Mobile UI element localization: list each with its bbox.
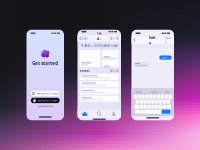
staticText: See all xyxy=(110,37,119,40)
staticText: Done xyxy=(165,36,172,44)
staticText: Today xyxy=(97,30,102,46)
staticText: See all xyxy=(110,69,119,73)
button[interactable]: Back xyxy=(133,37,140,43)
button[interactable] xyxy=(79,88,119,94)
staticText: Continue with Google xyxy=(37,92,59,95)
button[interactable]: Continue with Apple xyxy=(31,98,60,103)
button[interactable]: Back xyxy=(79,35,88,41)
button[interactable]: Done xyxy=(165,37,172,43)
button[interactable]: See all xyxy=(110,69,119,73)
button[interactable] xyxy=(79,81,119,87)
button[interactable]: Search xyxy=(92,110,106,118)
button[interactable] xyxy=(79,96,119,102)
button[interactable]: Continue with Google xyxy=(31,91,60,96)
staticText: Recent xyxy=(79,69,89,73)
button[interactable]: See all xyxy=(110,35,119,41)
staticText: Sure! xyxy=(162,56,169,59)
staticText: Back xyxy=(82,37,87,40)
staticText: Get started xyxy=(32,60,58,66)
button[interactable] xyxy=(79,74,119,80)
button[interactable]: Home xyxy=(77,110,92,118)
staticText: Hi Alex — here's what's new xyxy=(80,44,117,47)
staticText: Sofia xyxy=(149,35,157,45)
button[interactable]: Profile xyxy=(106,110,121,118)
staticText: Continue with Apple xyxy=(37,99,57,102)
